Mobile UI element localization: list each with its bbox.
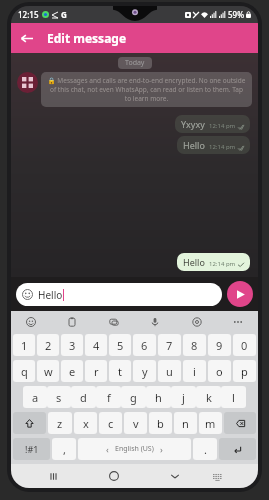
staticText: !#1 bbox=[25, 443, 39, 455]
staticText: Yxyxy bbox=[181, 118, 205, 130]
button[interactable]: 9 bbox=[208, 334, 231, 356]
button[interactable]: e bbox=[61, 360, 83, 382]
button[interactable]: u bbox=[158, 360, 181, 382]
button[interactable]: 6 bbox=[133, 334, 156, 356]
button[interactable]: k bbox=[196, 386, 221, 408]
staticText: Hello bbox=[183, 139, 205, 151]
button[interactable]: Stickers bbox=[106, 314, 122, 330]
button[interactable]: v bbox=[124, 412, 147, 434]
button[interactable]: g bbox=[121, 386, 146, 408]
staticText: 1 bbox=[21, 338, 28, 353]
button[interactable]: Home bbox=[103, 465, 125, 487]
staticText: v bbox=[133, 416, 139, 431]
staticText: t bbox=[118, 364, 122, 379]
button[interactable]: b bbox=[149, 412, 172, 434]
button[interactable]: 1 bbox=[13, 334, 35, 356]
staticText: i bbox=[193, 364, 196, 379]
button[interactable]: j bbox=[171, 386, 196, 408]
staticText: 4 bbox=[93, 338, 100, 353]
button[interactable]: r bbox=[85, 360, 107, 382]
button[interactable]: Voice input bbox=[147, 314, 163, 330]
button[interactable]: 0 bbox=[233, 334, 256, 356]
button[interactable]: o bbox=[208, 360, 231, 382]
staticText: Edit message bbox=[47, 30, 127, 46]
staticText: g bbox=[130, 390, 137, 405]
staticText: 12:14 pm bbox=[209, 122, 236, 130]
button[interactable]: q bbox=[13, 360, 35, 382]
button[interactable]: Hide keyboard bbox=[164, 465, 186, 487]
staticText: p bbox=[241, 364, 248, 379]
button[interactable]: c bbox=[99, 412, 122, 434]
button[interactable]: . bbox=[193, 438, 217, 460]
button[interactable]: More options bbox=[230, 314, 246, 330]
button[interactable]: Enter bbox=[219, 438, 256, 460]
staticText: Today bbox=[125, 58, 145, 68]
button[interactable]: 5 bbox=[109, 334, 131, 356]
staticText: , bbox=[63, 442, 66, 457]
staticText: f bbox=[107, 390, 111, 405]
staticText: r bbox=[94, 364, 99, 379]
staticText: G bbox=[61, 9, 67, 20]
button[interactable]: Keyboard layout bbox=[207, 466, 227, 486]
staticText: 12:15 bbox=[18, 9, 39, 20]
staticText: 🔒 Messages and calls are end-to-end encr… bbox=[47, 76, 246, 103]
button[interactable]: z bbox=[48, 412, 72, 434]
button[interactable]: Send bbox=[227, 281, 253, 307]
staticText: k bbox=[206, 390, 212, 405]
button[interactable]: 7 bbox=[158, 334, 181, 356]
button[interactable]: Backspace bbox=[224, 412, 256, 434]
staticText: 12:14 pm bbox=[209, 143, 236, 151]
button[interactable]: n bbox=[174, 412, 197, 434]
button[interactable]: s bbox=[47, 386, 71, 408]
button[interactable]: 8 bbox=[183, 334, 206, 356]
button[interactable]: Shift bbox=[13, 412, 46, 434]
button[interactable]: i bbox=[183, 360, 206, 382]
button[interactable]: t bbox=[109, 360, 131, 382]
staticText: 6 bbox=[141, 338, 148, 353]
staticText: Hello bbox=[38, 288, 63, 302]
button[interactable]: p bbox=[233, 360, 256, 382]
button[interactable]: Clipboard bbox=[64, 314, 80, 330]
staticText: u bbox=[166, 364, 173, 379]
staticText: z bbox=[57, 416, 63, 431]
button[interactable]: l bbox=[221, 386, 246, 408]
button[interactable]: y bbox=[133, 360, 156, 382]
button[interactable]: m bbox=[199, 412, 222, 434]
staticText: m bbox=[205, 416, 216, 431]
staticText: n bbox=[182, 416, 189, 431]
button[interactable]: Emoji bbox=[23, 314, 39, 330]
button[interactable]: x bbox=[74, 412, 97, 434]
staticText: l bbox=[232, 390, 235, 405]
button[interactable]: w bbox=[37, 360, 59, 382]
staticText: o bbox=[216, 364, 223, 379]
button[interactable]: Hello bbox=[177, 136, 250, 154]
button[interactable]: d bbox=[71, 386, 96, 408]
staticText: e bbox=[69, 364, 76, 379]
button[interactable]: f bbox=[96, 386, 121, 408]
button[interactable]: 4 bbox=[85, 334, 107, 356]
staticText: d bbox=[80, 390, 87, 405]
staticText: 2 bbox=[45, 338, 52, 353]
button[interactable]: a bbox=[23, 386, 47, 408]
button[interactable]: Hello bbox=[177, 253, 250, 271]
button[interactable]: , bbox=[52, 438, 76, 460]
button[interactable]: h bbox=[146, 386, 171, 408]
button[interactable]: ‹ bbox=[78, 438, 191, 460]
staticText: q bbox=[21, 364, 28, 379]
staticText: b bbox=[157, 416, 164, 431]
button[interactable]: Recents bbox=[42, 465, 64, 487]
button[interactable]: Settings bbox=[189, 314, 205, 330]
button[interactable]: Yxyxy bbox=[175, 115, 250, 133]
staticText: h bbox=[155, 390, 162, 405]
staticText: s bbox=[56, 390, 62, 405]
staticText: w bbox=[44, 364, 53, 379]
button[interactable]: !#1 bbox=[13, 438, 50, 460]
button[interactable]: 2 bbox=[37, 334, 59, 356]
button[interactable]: Back bbox=[11, 23, 41, 53]
staticText: 9 bbox=[216, 338, 223, 353]
staticText: x bbox=[83, 416, 89, 431]
staticText: 7 bbox=[166, 338, 173, 353]
button[interactable]: 3 bbox=[61, 334, 83, 356]
button[interactable]: Hello bbox=[16, 283, 222, 306]
staticText: a bbox=[32, 390, 39, 405]
